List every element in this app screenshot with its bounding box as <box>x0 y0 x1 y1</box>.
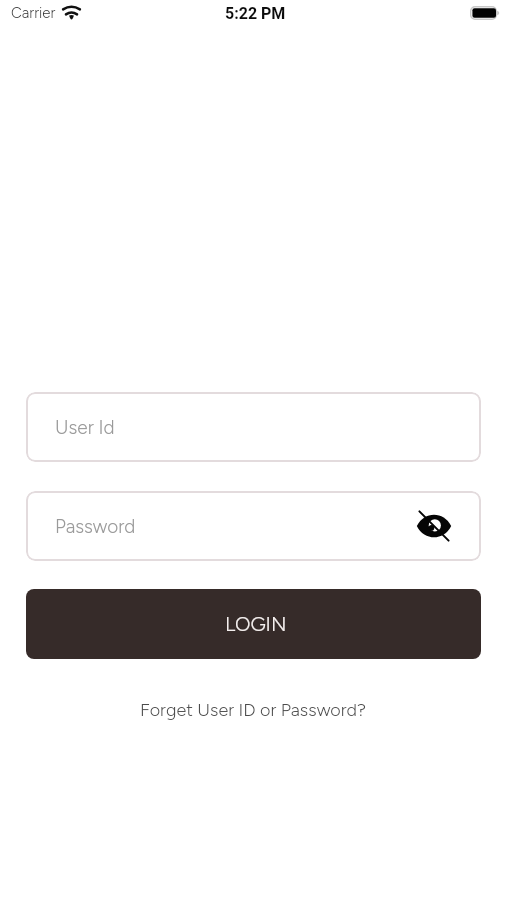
staticText: Carrier <box>11 4 56 22</box>
button[interactable]: LOGIN <box>26 589 481 659</box>
staticText: User Id <box>55 416 115 439</box>
button[interactable]: Password <box>26 491 481 561</box>
button[interactable]: User Id <box>26 392 481 462</box>
staticText: Password <box>55 515 136 538</box>
staticText: 5:22 PM <box>225 4 286 23</box>
staticText: LOGIN <box>225 612 287 636</box>
button[interactable]: Show password <box>416 508 452 544</box>
button[interactable]: Forget User ID or Password? <box>134 695 372 725</box>
